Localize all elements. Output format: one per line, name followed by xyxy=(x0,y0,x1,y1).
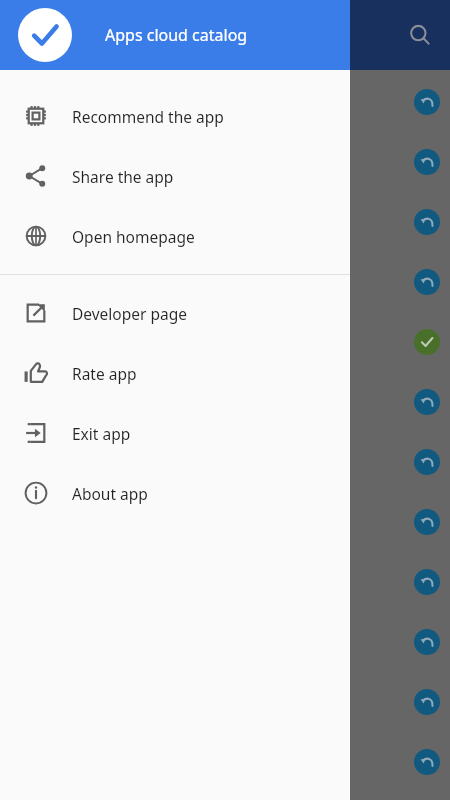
button[interactable]: Rate app xyxy=(0,343,350,403)
staticText: Apps cloud catalog xyxy=(105,24,248,46)
button[interactable]: About app xyxy=(0,463,350,523)
button[interactable]: Developer page xyxy=(0,283,350,343)
staticText: Open homepage xyxy=(72,226,195,247)
staticText: Exit app xyxy=(72,423,131,444)
button[interactable]: Recommend the app xyxy=(0,86,350,146)
staticText: Recommend the app xyxy=(72,106,224,127)
staticText: Rate app xyxy=(72,363,137,384)
button[interactable]: Exit app xyxy=(0,403,350,463)
button[interactable]: Search xyxy=(396,11,444,59)
staticText: Share the app xyxy=(72,166,174,187)
staticText: About app xyxy=(72,483,148,504)
button[interactable]: App logo xyxy=(18,8,72,62)
button[interactable]: Open homepage xyxy=(0,206,350,266)
staticText: Developer page xyxy=(72,303,187,324)
button[interactable]: Share the app xyxy=(0,146,350,206)
